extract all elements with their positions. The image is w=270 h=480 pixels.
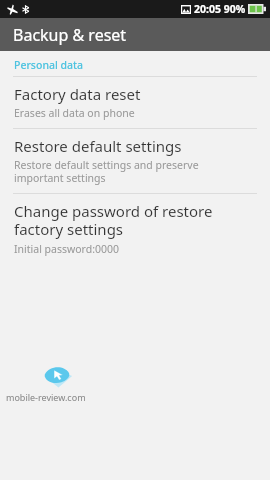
- staticText: Erases all data on phone: [14, 106, 135, 120]
- button[interactable]: Factory data reset: [0, 77, 270, 128]
- button[interactable]: Change password of restore factory setti…: [0, 194, 270, 264]
- staticText: Change password of restore factory setti…: [14, 201, 248, 240]
- staticText: 20:05 90%: [194, 2, 246, 16]
- staticText: Personal data: [14, 58, 84, 72]
- staticText: Backup & reset: [13, 24, 127, 46]
- button[interactable]: Restore default settings: [0, 129, 270, 193]
- staticText: mobile-review.com: [6, 391, 86, 403]
- button[interactable]: Backup & reset: [0, 18, 270, 51]
- staticText: Initial password:0000: [14, 242, 120, 256]
- staticText: Restore default settings and preserve im…: [14, 158, 248, 185]
- staticText: Restore default settings: [14, 136, 182, 156]
- other: mobile-review logo: [39, 364, 75, 390]
- staticText: Factory data reset: [14, 84, 141, 104]
